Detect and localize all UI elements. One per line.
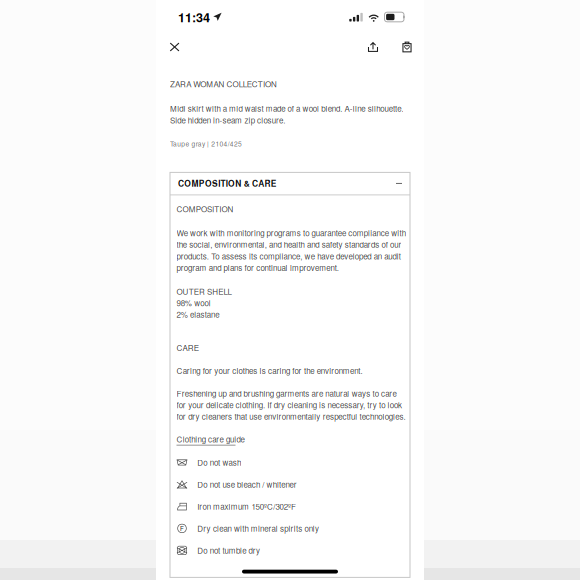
button[interactable]: Do not use bleach / whitener (176, 473, 403, 495)
staticText: Do not wash (197, 457, 241, 468)
button[interactable]: Iron maximum 150ºC/302ºF (176, 495, 403, 517)
staticText: Dry clean with mineral spirits only (197, 523, 319, 534)
staticText: CARE (176, 342, 199, 353)
button[interactable]: Close (163, 35, 187, 59)
staticText: Midi skirt with a mid waist made of a wo… (170, 103, 403, 114)
staticText: 2% elastane (176, 309, 219, 320)
staticText: Do not use bleach / whitener (197, 479, 297, 490)
button[interactable]: COMPOSITION & CARE (170, 172, 410, 194)
staticText: Freshening up and brushing garments are … (176, 387, 396, 399)
staticText: for dry cleaners that use environmentall… (176, 411, 405, 422)
button[interactable]: Wishlist (395, 35, 419, 59)
staticText: Iron maximum 150ºC/302ºF (197, 501, 296, 512)
staticText: F (180, 524, 184, 533)
staticText: Taupe gray | 2104/425 (170, 139, 242, 148)
staticText: 98% wool (176, 297, 211, 309)
staticText: COMPOSITION (176, 203, 233, 214)
staticText: Clothing care guide (176, 433, 245, 445)
staticText: COMPOSITION & CARE (178, 177, 277, 189)
staticText: Do not tumble dry (197, 545, 260, 556)
button[interactable]: Do not tumble dry (176, 539, 403, 561)
staticText: the social, environmental, and health an… (176, 239, 401, 250)
staticText: for your delicate clothing. If dry clean… (176, 399, 402, 411)
button[interactable]: Do not wash (176, 451, 403, 473)
staticText: products. To assess its compliance, we h… (176, 250, 401, 262)
staticText: Caring for your clothes is caring for th… (176, 365, 362, 376)
button[interactable]: Clothing care guide (176, 433, 245, 445)
staticText: 11:34 (178, 8, 210, 26)
staticText: Side hidden in-seam zip closure. (170, 114, 285, 126)
button[interactable]: Share (361, 35, 385, 59)
button[interactable]: F (176, 517, 403, 539)
staticText: ZARA WOMAN COLLECTION (170, 78, 277, 90)
staticText: program and plans for continual improvem… (176, 262, 339, 273)
staticText: We work with monitoring programs to guar… (176, 227, 406, 239)
staticText: OUTER SHELL (176, 285, 231, 297)
